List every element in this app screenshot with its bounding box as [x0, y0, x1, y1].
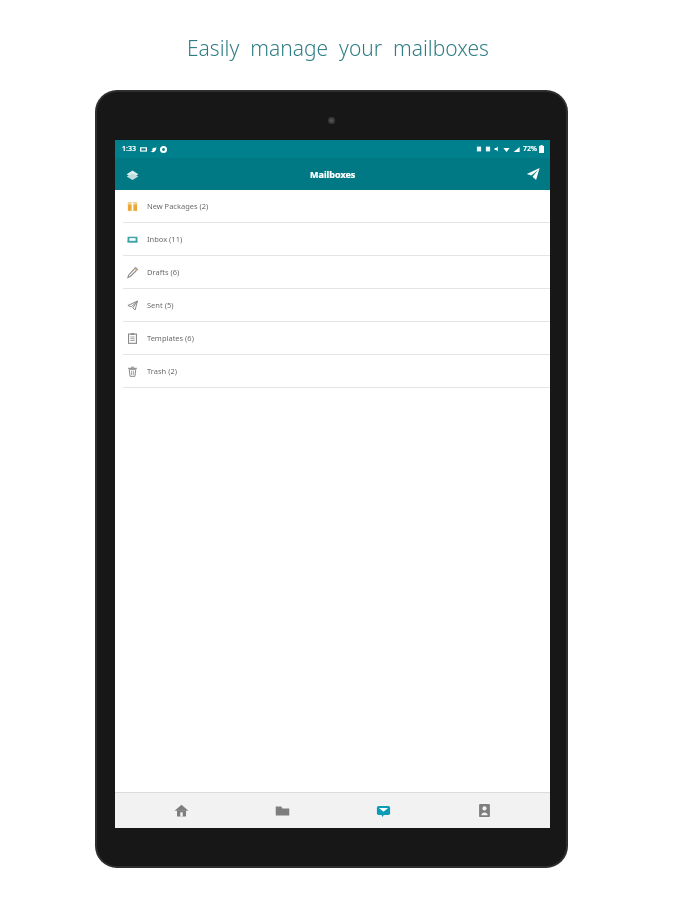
button[interactable]: Mailboxes — [348, 792, 418, 828]
staticText: Easily manage your mailboxes — [187, 34, 489, 63]
button[interactable]: Inbox (11) — [115, 223, 550, 255]
staticText: 72% — [523, 144, 537, 154]
staticText: Trash (2) — [147, 366, 177, 376]
button[interactable]: New Packages (2) — [115, 190, 550, 222]
button[interactable]: Contacts — [449, 792, 519, 828]
staticText: 1:33 — [122, 144, 136, 154]
button[interactable]: Drafts (6) — [115, 256, 550, 288]
button[interactable]: Sent (5) — [115, 289, 550, 321]
button[interactable]: Templates (6) — [115, 322, 550, 354]
staticText: Drafts (6) — [147, 267, 180, 277]
staticText: Mailboxes — [310, 168, 356, 180]
button[interactable]: Compose — [521, 162, 545, 186]
button[interactable]: Home — [146, 792, 216, 828]
staticText: Sent (5) — [147, 300, 174, 310]
button[interactable]: Menu — [120, 162, 144, 186]
button[interactable]: Trash (2) — [115, 355, 550, 387]
staticText: New Packages (2) — [147, 201, 209, 211]
staticText: Inbox (11) — [147, 234, 183, 244]
button[interactable]: Folders — [247, 792, 317, 828]
staticText: Templates (6) — [147, 333, 194, 343]
